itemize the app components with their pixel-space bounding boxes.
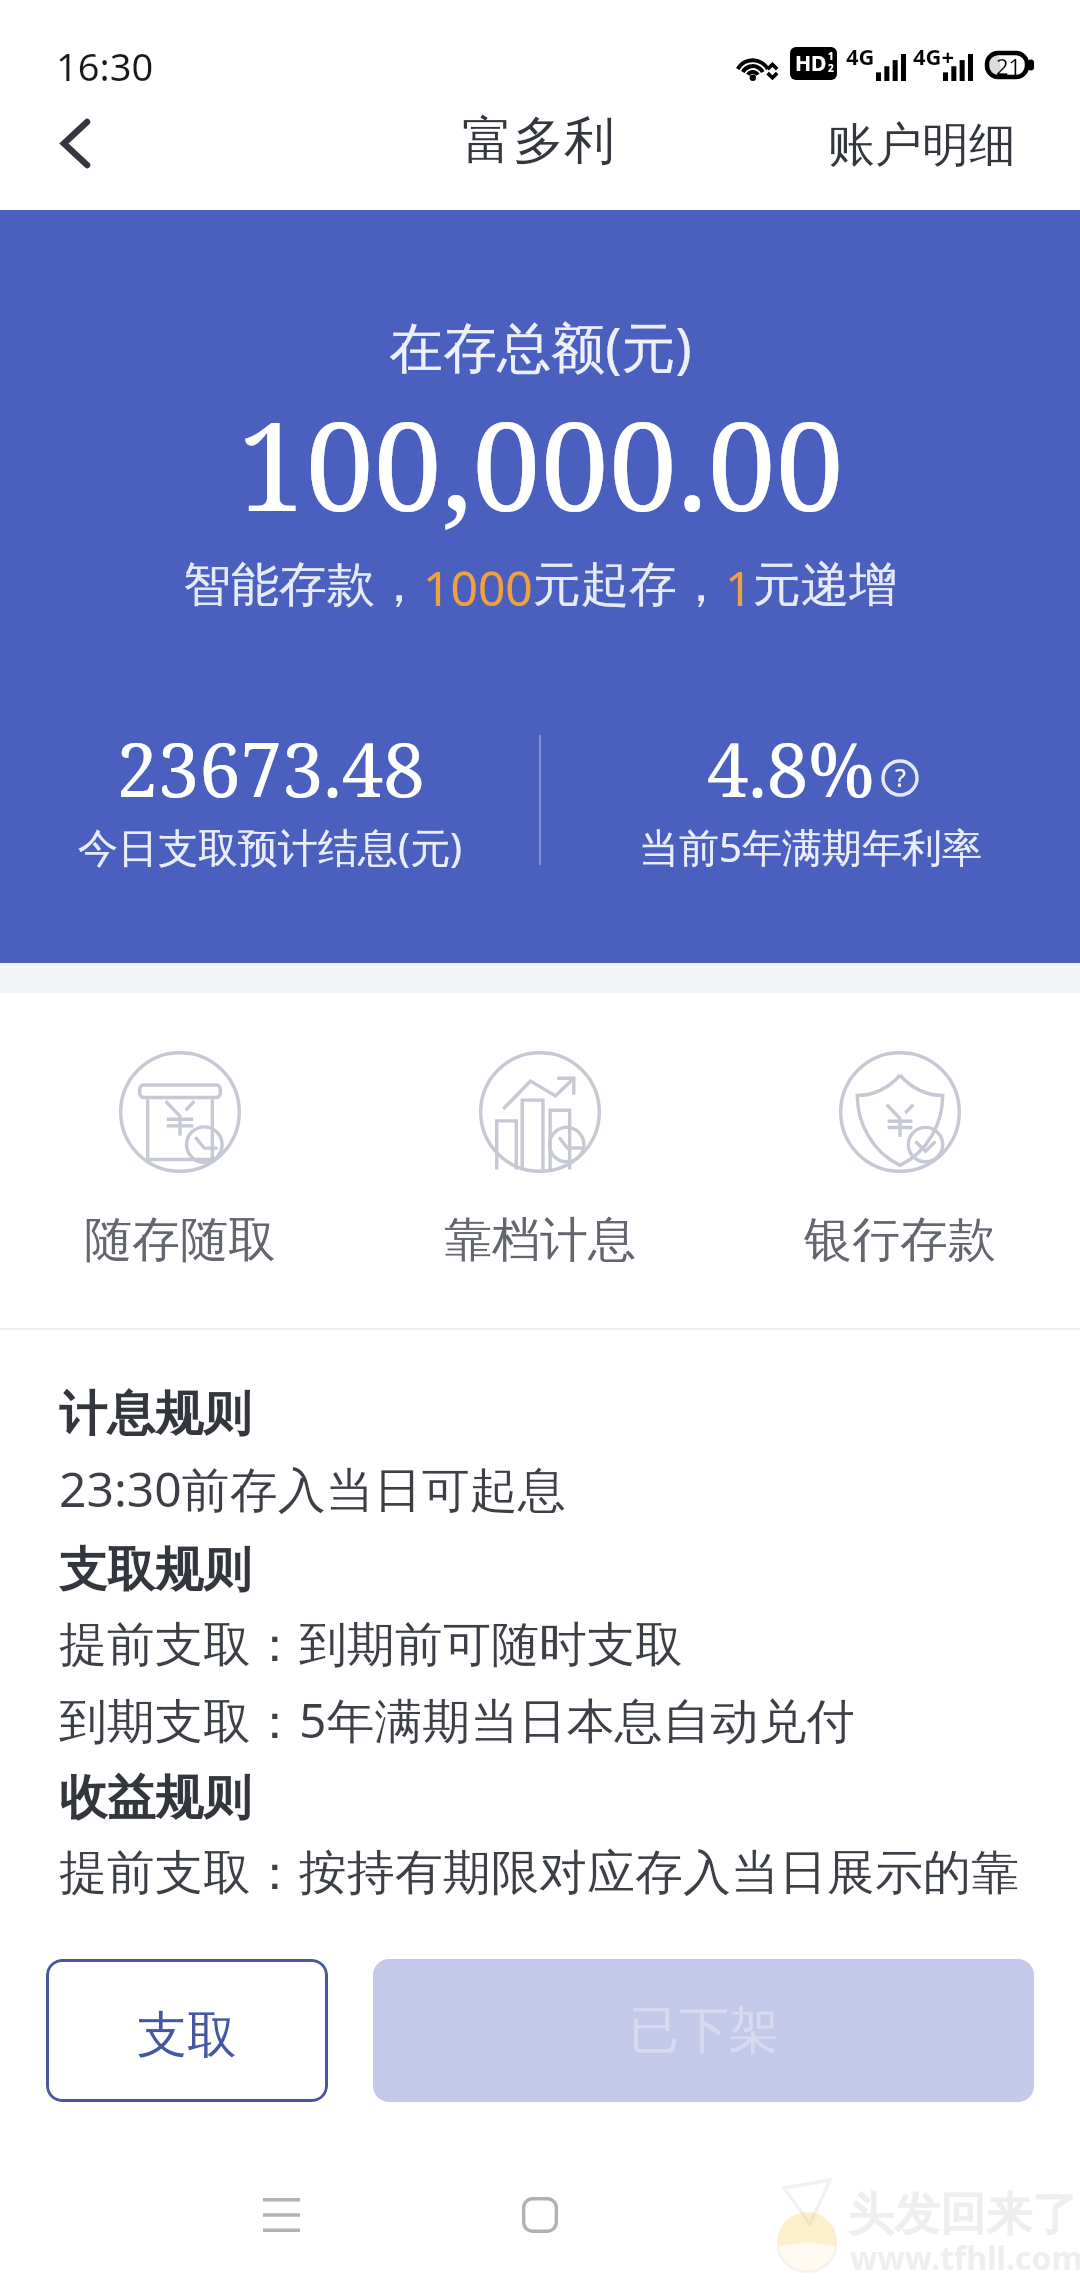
staticText: 1: [828, 49, 834, 63]
button[interactable]: Recent apps: [221, 2155, 341, 2275]
staticText: 4G: [846, 41, 875, 71]
staticText: 4.8%: [707, 718, 875, 819]
staticText: 富多利: [462, 109, 615, 173]
staticText: 随存随取: [84, 1210, 276, 1270]
staticText: 支取: [137, 2004, 237, 2067]
staticText: 在存总额(元): [389, 309, 692, 383]
button[interactable]: 账户明细: [791, 103, 1053, 210]
button[interactable]: Feature: [90, 1022, 270, 1202]
staticText: 当前5年满期年利率: [639, 819, 982, 874]
staticText: 账户明细: [828, 116, 1016, 175]
staticText: 计息规则: [59, 1384, 251, 1444]
staticText: 靠档计息: [444, 1210, 636, 1270]
staticText: 头发回来了: [848, 2186, 1078, 2244]
button[interactable]: Feature: [450, 1022, 630, 1202]
staticText: ?: [895, 760, 906, 794]
button[interactable]: Rate info: [858, 736, 942, 820]
staticText: 4G+: [913, 41, 955, 71]
staticText: 已下架: [629, 1999, 779, 2062]
staticText: 1: [725, 555, 753, 620]
staticText: 支取规则: [59, 1540, 251, 1600]
staticText: 到期支取：5年满期当日本息自动兑付: [59, 1687, 855, 1753]
staticText: 16:30: [56, 40, 154, 92]
staticText: 23:30前存入当日可起息: [59, 1456, 566, 1522]
staticText: 元递增: [753, 555, 897, 615]
staticText: HD: [795, 49, 827, 78]
staticText: 今日支取预计结息(元): [78, 819, 462, 874]
button[interactable]: Back: [0, 103, 150, 210]
button[interactable]: 已下架: [373, 1959, 1034, 2102]
button[interactable]: Home: [480, 2155, 600, 2275]
staticText: 智能存款，: [183, 555, 423, 615]
staticText: 21: [996, 51, 1022, 79]
staticText: 100,000.00: [237, 381, 844, 547]
staticText: 23673.48: [116, 718, 425, 819]
button[interactable]: 支取: [46, 1959, 328, 2102]
staticText: 2: [828, 61, 834, 75]
staticText: 提前支取：按持有期限对应存入当日展示的靠: [59, 1843, 1019, 1903]
staticText: 提前支取：到期前可随时支取: [59, 1615, 683, 1675]
staticText: www.tfhll.com: [850, 2236, 1080, 2280]
staticText: 1000: [423, 555, 533, 620]
staticText: 银行存款: [804, 1210, 996, 1270]
staticText: 元起存，: [533, 555, 725, 615]
button[interactable]: Feature: [810, 1022, 990, 1202]
staticText: 收益规则: [59, 1768, 251, 1828]
